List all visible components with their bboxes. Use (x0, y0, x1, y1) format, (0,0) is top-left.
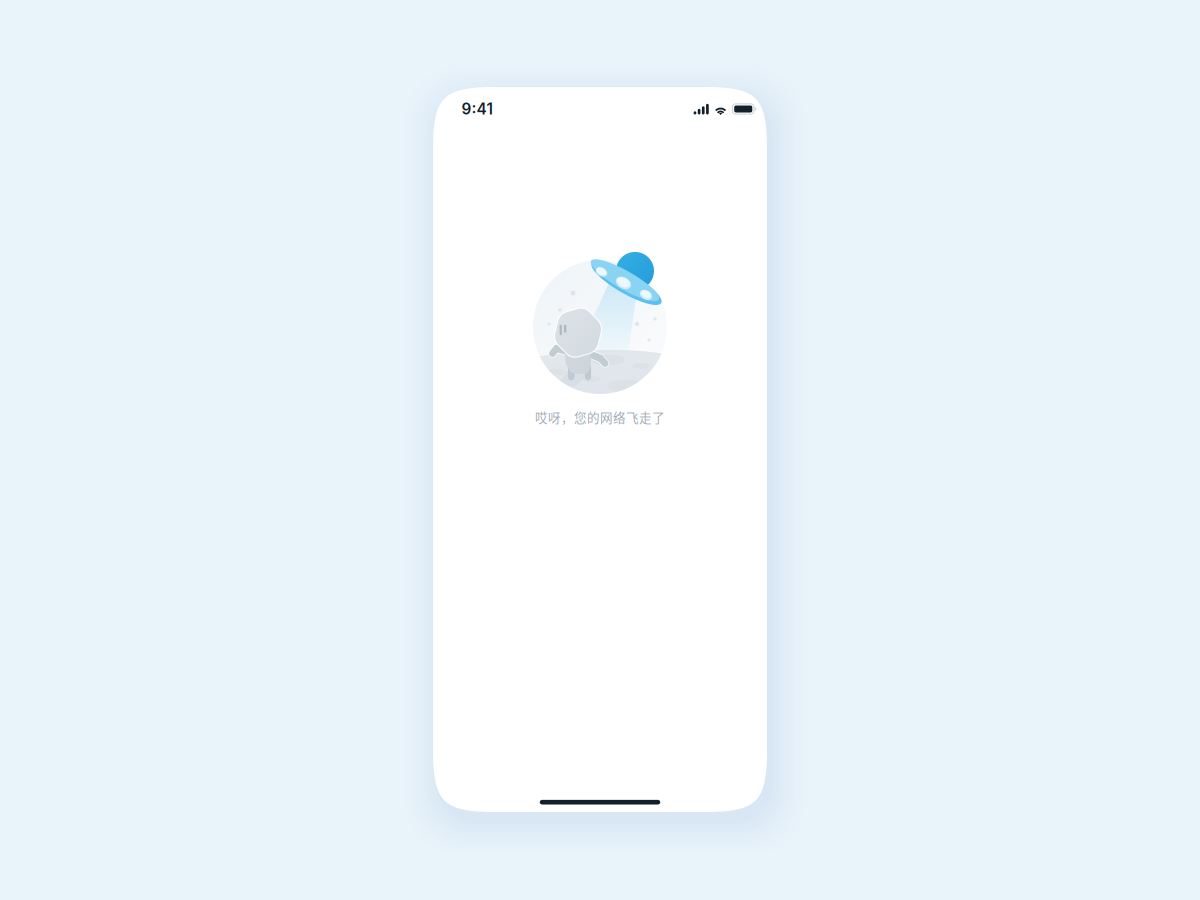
staticText: 9:41 (461, 100, 492, 118)
staticText: 哎呀，您的网络飞走了 (535, 408, 665, 426)
